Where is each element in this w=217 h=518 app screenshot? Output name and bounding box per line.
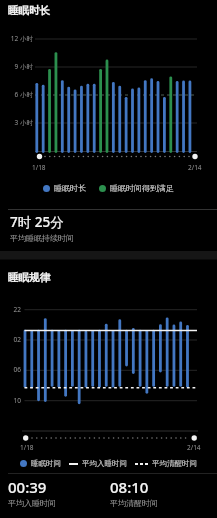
button[interactable]: 7时 25分: [10, 213, 74, 243]
staticText: 3 小时: [0, 118, 33, 127]
staticText: 9 小时: [0, 62, 33, 71]
staticText: 平均清醒时间: [152, 459, 197, 468]
staticText: 22: [0, 305, 21, 314]
staticText: 08:10: [110, 477, 149, 497]
staticText: 02: [0, 335, 21, 344]
button[interactable]: 00:39: [8, 477, 56, 508]
button[interactable]: 08:10: [110, 477, 158, 508]
staticText: 睡眠时间: [31, 459, 61, 468]
staticText: 睡眠时长: [54, 183, 86, 193]
staticText: 10: [0, 396, 21, 405]
staticText: 平均入睡时间: [8, 498, 56, 508]
staticText: 6 小时: [0, 90, 33, 99]
staticText: 平均入睡时间: [82, 459, 127, 468]
staticText: 1/18: [32, 163, 46, 172]
staticText: 00:39: [8, 477, 47, 497]
button[interactable]: [43, 185, 50, 192]
staticText: 平均睡眠持续时间: [10, 233, 74, 243]
staticText: 睡眠规律: [8, 271, 50, 284]
staticText: 睡眠时长: [8, 4, 50, 17]
staticText: 7时 25分: [10, 213, 64, 231]
staticText: 06: [0, 365, 21, 374]
staticText: 睡眠时间得到满足: [110, 183, 174, 193]
staticText: 2/14: [187, 443, 201, 452]
staticText: 2/14: [188, 163, 202, 172]
staticText: 平均清醒时间: [110, 498, 158, 508]
staticText: 12 小时: [0, 34, 33, 43]
staticText: 1/18: [20, 443, 34, 452]
